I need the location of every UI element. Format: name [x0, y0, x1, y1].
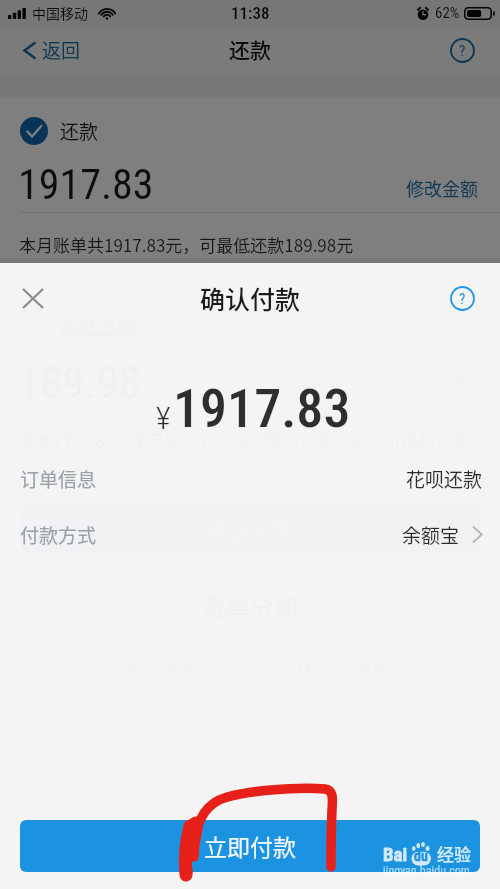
button[interactable]: 确认还款	[20, 507, 480, 552]
staticText: 修改金额	[406, 175, 478, 201]
staticText: 1917.83	[18, 160, 154, 209]
staticText: jingyan.baidu.com	[383, 864, 470, 878]
staticText: 经验	[437, 841, 471, 866]
staticText: 还款	[60, 117, 99, 145]
staticText: ?	[459, 42, 466, 60]
staticText: Bai	[383, 843, 408, 865]
staticText: 本月账单共1917.83元，可最低还款189.98元	[19, 232, 354, 257]
staticText: ¥	[156, 399, 171, 437]
staticText: 确认付款	[200, 280, 301, 316]
staticText: 返回	[42, 36, 81, 64]
staticText: 花呗还款	[406, 465, 483, 493]
button[interactable]: 立即付款	[20, 820, 480, 872]
staticText: 11:38	[231, 3, 270, 23]
staticText: 订单信息	[20, 465, 97, 493]
staticText: 立即付款	[204, 829, 296, 862]
staticText: 中国移动	[32, 3, 88, 23]
staticText: 62%	[435, 4, 460, 22]
button[interactable]: Help	[450, 286, 475, 311]
staticText: du	[414, 848, 428, 864]
staticText: 付款方式	[20, 521, 97, 549]
button[interactable]: 订单信息	[0, 451, 500, 506]
button[interactable]: Help	[450, 38, 475, 63]
button[interactable]: 返回	[23, 36, 81, 64]
staticText: 1917.83	[173, 377, 351, 440]
staticText: 余额宝	[402, 521, 460, 549]
staticText: 还款	[229, 34, 271, 64]
staticText: ?	[459, 290, 466, 308]
button[interactable]: Close	[17, 282, 49, 314]
button[interactable]: 付款方式	[0, 507, 500, 562]
